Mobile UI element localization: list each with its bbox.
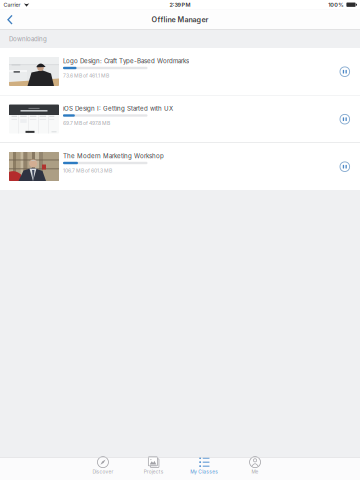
staticText: iOS Design I: Getting Started with UX: [63, 105, 173, 112]
staticText: Logo Design: Craft Type-Based Wordmarks: [63, 57, 189, 65]
button[interactable]: Logo Design: Craft Type-Based Wordmarks: [0, 48, 360, 95]
button[interactable]: Back: [3, 9, 17, 30]
button[interactable]: My Classes: [179, 457, 230, 480]
staticText: Me: [251, 469, 258, 475]
staticText: 106.7 MB of 601.3 MB: [63, 168, 112, 174]
staticText: 2:39 PM: [169, 1, 190, 8]
button[interactable]: iOS Design I: Getting Started with UX: [0, 95, 360, 142]
staticText: Carrier: [4, 1, 21, 8]
button[interactable]: Me: [230, 457, 280, 480]
staticText: The Modern Marketing Workshop: [63, 152, 164, 160]
staticText: 100%: [328, 1, 343, 8]
staticText: Discover: [92, 469, 113, 475]
staticText: 73.6 MB of 461.1 MB: [63, 73, 109, 79]
staticText: Projects: [144, 469, 164, 475]
staticText: 69.7 MB of 497.8 MB: [63, 120, 110, 126]
button[interactable]: Projects: [128, 457, 179, 480]
button[interactable]: Discover: [78, 457, 128, 480]
staticText: My Classes: [190, 469, 218, 475]
button[interactable]: The Modern Marketing Workshop: [0, 143, 360, 190]
staticText: Offline Manager: [151, 15, 208, 24]
staticText: Downloading: [9, 35, 47, 43]
